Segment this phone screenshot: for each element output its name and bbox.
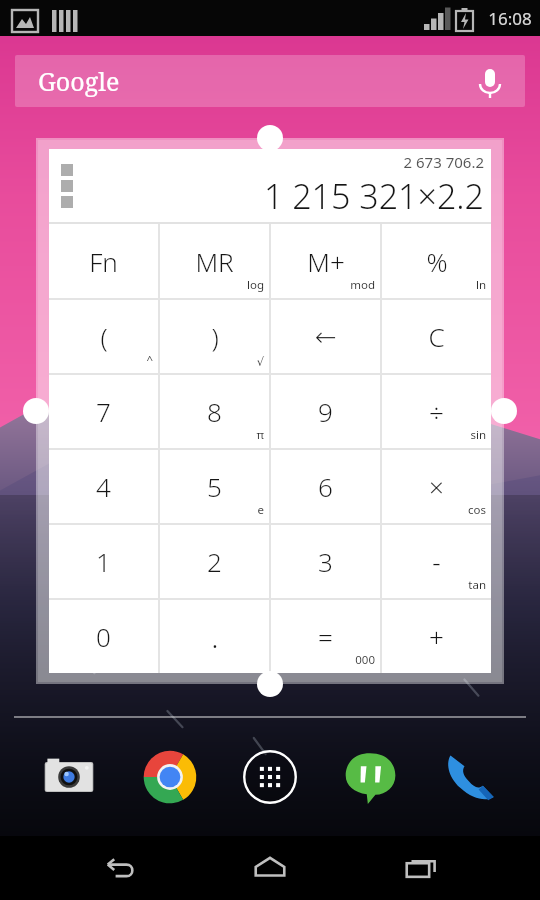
staticText: mod [350,277,375,293]
staticText: 000 [355,652,375,668]
button[interactable]: . [160,600,269,673]
staticText: 0 [96,619,111,654]
button[interactable]: 9 [271,375,380,448]
button[interactable]: MR [160,224,269,298]
staticText: 2 673 706.2 [403,152,484,172]
staticText: 1 [96,544,111,579]
button[interactable]: M+ [271,224,380,298]
button[interactable]: Menu [49,149,491,222]
button[interactable]: Menu [61,164,73,208]
staticText: 16:08 [488,7,532,30]
button[interactable]: - [382,525,491,598]
button[interactable]: ) [160,300,269,373]
button[interactable]: 3 [271,525,380,598]
button[interactable]: Home [238,836,302,900]
button[interactable]: 6 [271,450,380,523]
button[interactable]: Fn [49,224,158,298]
button[interactable]: ( [49,300,158,373]
staticText: MR [195,244,234,279]
button[interactable]: = [271,600,380,673]
button[interactable]: Voice search [473,64,507,98]
button[interactable]: ÷ [382,375,491,448]
staticText: % [426,244,448,279]
staticText: M+ [307,244,345,279]
staticText: + [429,619,444,654]
staticText: . [211,616,219,657]
staticText: √ [256,355,264,368]
button[interactable]: Google [15,55,525,107]
staticText: C [428,319,445,354]
staticText: 1 215 321×2.2 [263,173,484,219]
button[interactable]: Resize bottom [257,671,283,697]
staticText: 4 [96,469,111,504]
button[interactable]: Recents [389,836,453,900]
button[interactable]: Chrome [139,746,201,808]
staticText: 8 [207,394,222,429]
button[interactable]: Apps [239,746,301,808]
staticText: π [256,427,264,443]
staticText: log [247,277,264,293]
button[interactable]: 5 [160,450,269,523]
button[interactable]: Camera [38,746,100,808]
button[interactable]: + [382,600,491,673]
staticText: ← [315,322,337,352]
staticText: - [432,544,441,579]
button[interactable]: Phone [440,746,502,808]
button[interactable]: 0 [49,600,158,673]
button[interactable]: 1 [49,525,158,598]
staticText: ( [100,319,108,354]
staticText: 6 [318,469,333,504]
button[interactable]: 4 [49,450,158,523]
staticText: ^ [146,352,153,368]
staticText: e [257,502,264,518]
button[interactable]: 2 [160,525,269,598]
button[interactable]: Resize right [491,398,517,424]
staticText: 9 [318,394,333,429]
staticText: × [429,469,444,504]
staticText: 7 [96,394,111,429]
staticText: ) [211,319,219,354]
staticText: sin [470,427,486,443]
staticText: 3 [318,544,333,579]
staticText: Fn [89,244,118,279]
button[interactable]: % [382,224,491,298]
button[interactable]: 8 [160,375,269,448]
button[interactable]: Hangouts [339,746,401,808]
button[interactable]: Resize top [257,125,283,151]
staticText: cos [468,502,486,518]
button[interactable]: ← [271,300,380,373]
staticText: 5 [207,469,222,504]
button[interactable]: Resize left [23,398,49,424]
staticText: = [318,619,333,654]
staticText: 2 [207,544,222,579]
staticText: ln [475,277,486,293]
button[interactable]: C [382,300,491,373]
staticText: tan [468,577,486,593]
button[interactable]: × [382,450,491,523]
button[interactable]: 7 [49,375,158,448]
staticText: ÷ [429,394,444,429]
staticText: Google [38,64,120,98]
button[interactable]: Back [87,836,151,900]
